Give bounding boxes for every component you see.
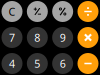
staticText: 6	[60, 56, 66, 71]
button[interactable]: C	[1, 1, 22, 22]
button[interactable]: 6	[52, 53, 73, 74]
staticText: 9	[60, 30, 66, 45]
button[interactable]: Percent	[52, 1, 73, 22]
button[interactable]: Divide	[77, 1, 98, 22]
staticText: 8	[34, 30, 40, 45]
button[interactable]: 9	[52, 27, 73, 48]
button[interactable]: 4	[1, 53, 22, 74]
button[interactable]: Multiply	[77, 27, 98, 48]
button[interactable]: 8	[27, 27, 48, 48]
button[interactable]: 7	[1, 27, 22, 48]
button[interactable]: 5	[27, 53, 48, 74]
staticText: 7	[9, 30, 15, 45]
staticText: 5	[34, 56, 40, 71]
staticText: C	[8, 4, 15, 19]
staticText: 4	[9, 56, 15, 71]
button[interactable]: Minus	[77, 53, 98, 74]
button[interactable]: Plus minus	[27, 1, 48, 22]
